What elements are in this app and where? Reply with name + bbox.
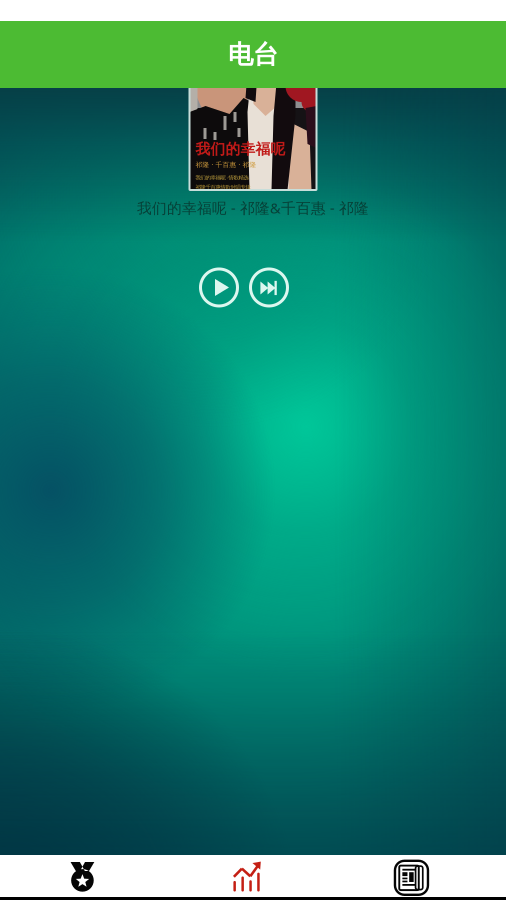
- staticText: 我们的幸福呢 - 祁隆&千百惠 - 祁隆: [137, 198, 369, 217]
- staticText: 我们的幸福呢 · 情歌精选: [195, 174, 248, 181]
- button[interactable]: News: [337, 855, 506, 897]
- button[interactable]: Charts: [169, 855, 337, 897]
- staticText: 电台: [228, 39, 278, 70]
- staticText: 祁隆千百惠情歌对唱专辑: [195, 184, 250, 191]
- button[interactable]: Play: [200, 268, 238, 306]
- button[interactable]: Rankings: [0, 855, 169, 897]
- staticText: 我们的幸福呢: [195, 140, 285, 158]
- staticText: 祁隆 · 千百惠 · 祁隆: [195, 160, 256, 169]
- button[interactable]: Next track: [250, 268, 288, 306]
